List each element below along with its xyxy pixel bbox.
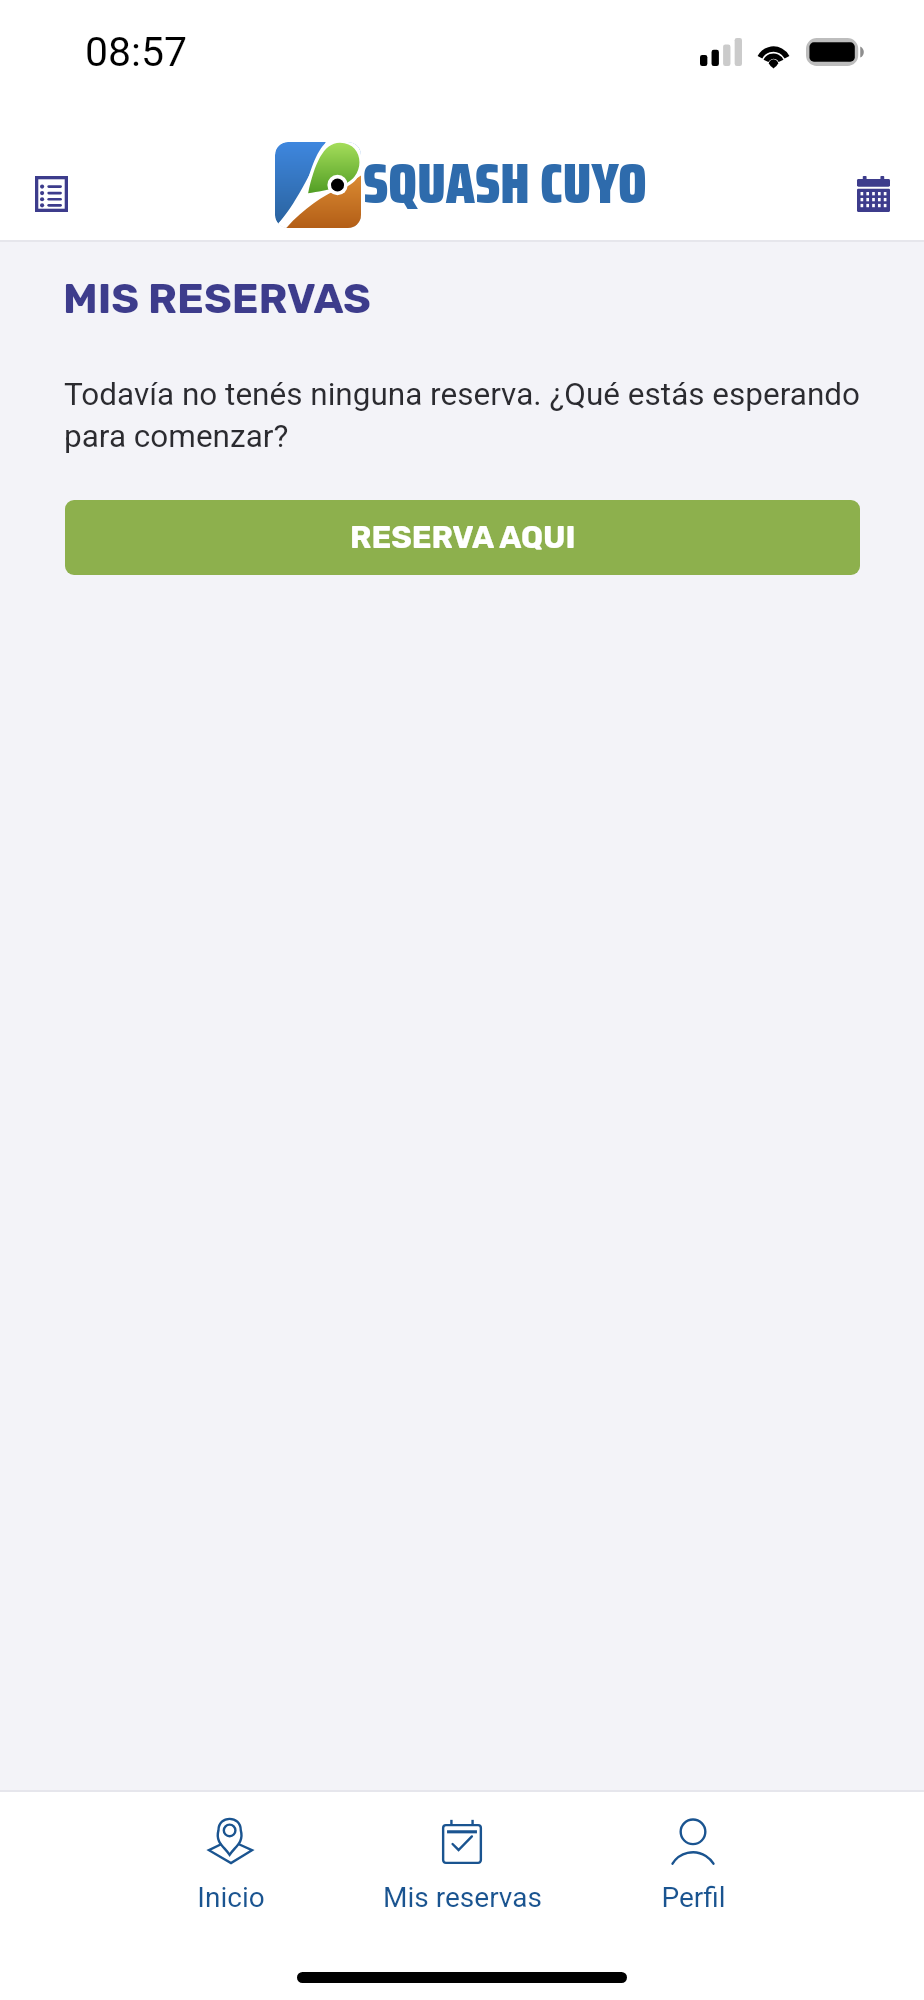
button[interactable]: RESERVA AQUI xyxy=(65,500,860,575)
button[interactable]: Perfil xyxy=(588,1808,798,1926)
staticText: Inicio xyxy=(197,1881,265,1914)
staticText: MIS RESERVAS xyxy=(63,274,371,324)
button[interactable]: Lista de reservas xyxy=(13,156,89,232)
staticText: 08:57 xyxy=(85,28,188,76)
button[interactable]: Mis reservas xyxy=(357,1808,567,1926)
staticText: Todavía no tenés ninguna reserva. ¿Qué e… xyxy=(64,376,864,455)
staticText: Perfil xyxy=(661,1881,726,1914)
button[interactable]: Calendario xyxy=(835,156,911,232)
button[interactable]: Inicio xyxy=(126,1808,336,1926)
staticText: SQUASH CUYO xyxy=(363,139,647,228)
staticText: RESERVA AQUI xyxy=(350,519,576,556)
staticText: Mis reservas xyxy=(383,1881,542,1914)
